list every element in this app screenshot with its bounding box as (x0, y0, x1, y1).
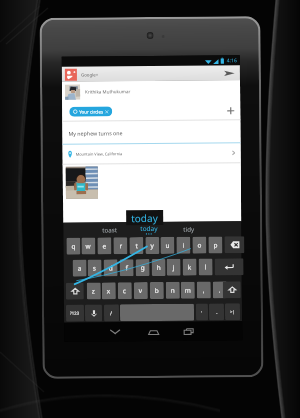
button[interactable]: g (135, 259, 150, 276)
staticText: e (102, 241, 106, 250)
button[interactable]: / (104, 304, 119, 321)
button[interactable]: a (72, 260, 87, 277)
staticText: u (165, 241, 170, 250)
staticText: t (135, 241, 138, 250)
button[interactable]: ' (196, 303, 208, 321)
button[interactable]: l (198, 258, 213, 276)
button[interactable]: z (87, 282, 101, 299)
button[interactable]: u (160, 237, 174, 254)
other: Backspace (230, 241, 239, 248)
staticText: Mountain View, California (76, 151, 123, 157)
staticText: y (150, 241, 154, 250)
button[interactable]: h (151, 259, 166, 276)
staticText: toast (102, 225, 117, 233)
button[interactable]: w (81, 237, 95, 255)
button[interactable] (120, 304, 194, 321)
button[interactable]: Google+ (62, 65, 240, 82)
staticText: ?123 (70, 311, 80, 317)
staticText: i (182, 241, 184, 250)
button[interactable]: ?123 (66, 305, 84, 322)
staticText: >| (230, 309, 235, 315)
staticText: 4:16 (227, 57, 237, 64)
staticText: Krithika Muthukumar (85, 88, 131, 95)
button[interactable]: Mountain View, California (67, 143, 236, 164)
staticText: today (131, 211, 158, 225)
button[interactable]: f (119, 259, 134, 276)
button[interactable]: o (192, 236, 206, 254)
button[interactable]: , (197, 281, 211, 299)
staticText: r (119, 241, 122, 250)
staticText: c (123, 286, 127, 295)
staticText: n (171, 286, 176, 295)
staticText: . (219, 285, 221, 294)
button[interactable]: c (118, 282, 132, 299)
button[interactable]: - (209, 303, 224, 320)
button[interactable]: r (113, 237, 127, 254)
staticText: k (188, 263, 192, 272)
button[interactable]: Backspace (224, 236, 244, 253)
staticText: g (141, 263, 145, 272)
other: Enter (225, 263, 234, 270)
button[interactable]: b (150, 282, 164, 299)
button[interactable]: t (129, 237, 143, 254)
staticText: s (93, 263, 97, 272)
button[interactable]: Your circles (73, 106, 108, 117)
staticText: x (107, 286, 111, 295)
staticText: p (213, 240, 217, 249)
button[interactable]: Voice input (85, 304, 102, 321)
staticText: / (110, 309, 113, 316)
button[interactable]: Recent apps (173, 324, 203, 339)
staticText: My nephew turns one (68, 129, 123, 137)
staticText: h (157, 263, 162, 272)
staticText: z (92, 286, 96, 295)
button[interactable]: Attached photo (66, 166, 98, 199)
button[interactable]: today (129, 222, 168, 236)
button[interactable]: e (97, 237, 111, 254)
staticText: o (197, 241, 201, 250)
button[interactable]: j (166, 259, 181, 276)
button[interactable]: >| (225, 303, 240, 320)
button[interactable]: Add (225, 105, 235, 115)
staticText: l (205, 262, 207, 271)
button[interactable]: v (134, 282, 148, 299)
button[interactable]: Home (138, 324, 168, 339)
staticText: tidy (183, 225, 194, 233)
button[interactable]: Profile photo (65, 80, 240, 102)
staticText: m (185, 286, 192, 295)
button[interactable]: Profile photo (65, 85, 80, 100)
button[interactable]: k (182, 259, 197, 276)
button[interactable]: d (103, 259, 118, 276)
button[interactable]: toast (90, 222, 129, 236)
button[interactable]: x (102, 282, 116, 299)
button[interactable]: Shift (66, 283, 84, 300)
button[interactable]: Shift (223, 281, 241, 298)
button[interactable]: . (213, 281, 227, 298)
other: Voice input (91, 309, 97, 318)
staticText: d (109, 263, 113, 272)
other: Shift (229, 286, 236, 293)
button[interactable]: s (87, 259, 102, 276)
button[interactable]: tidy (169, 221, 208, 236)
staticText: b (155, 286, 159, 295)
button[interactable]: q (66, 238, 80, 255)
staticText: ' (201, 310, 203, 316)
staticText: v (139, 286, 143, 295)
button[interactable]: i (176, 237, 190, 254)
staticText: Google+ (81, 71, 99, 78)
button[interactable]: Send (223, 66, 236, 79)
other: Shift (72, 288, 79, 295)
staticText: Your circles (79, 108, 103, 115)
staticText: a (78, 264, 82, 273)
staticText: j (173, 263, 175, 272)
button[interactable]: My nephew turns one (68, 120, 240, 144)
button[interactable]: n (166, 282, 180, 299)
staticText: , (203, 285, 205, 294)
staticText: f (126, 263, 129, 272)
staticText: - (216, 309, 218, 315)
button[interactable]: p (208, 236, 222, 253)
button[interactable]: Enter (214, 258, 244, 275)
button[interactable]: Hide keyboard (100, 324, 130, 339)
staticText: q (71, 242, 75, 251)
button[interactable]: y (145, 237, 159, 254)
button[interactable]: m (181, 282, 195, 299)
